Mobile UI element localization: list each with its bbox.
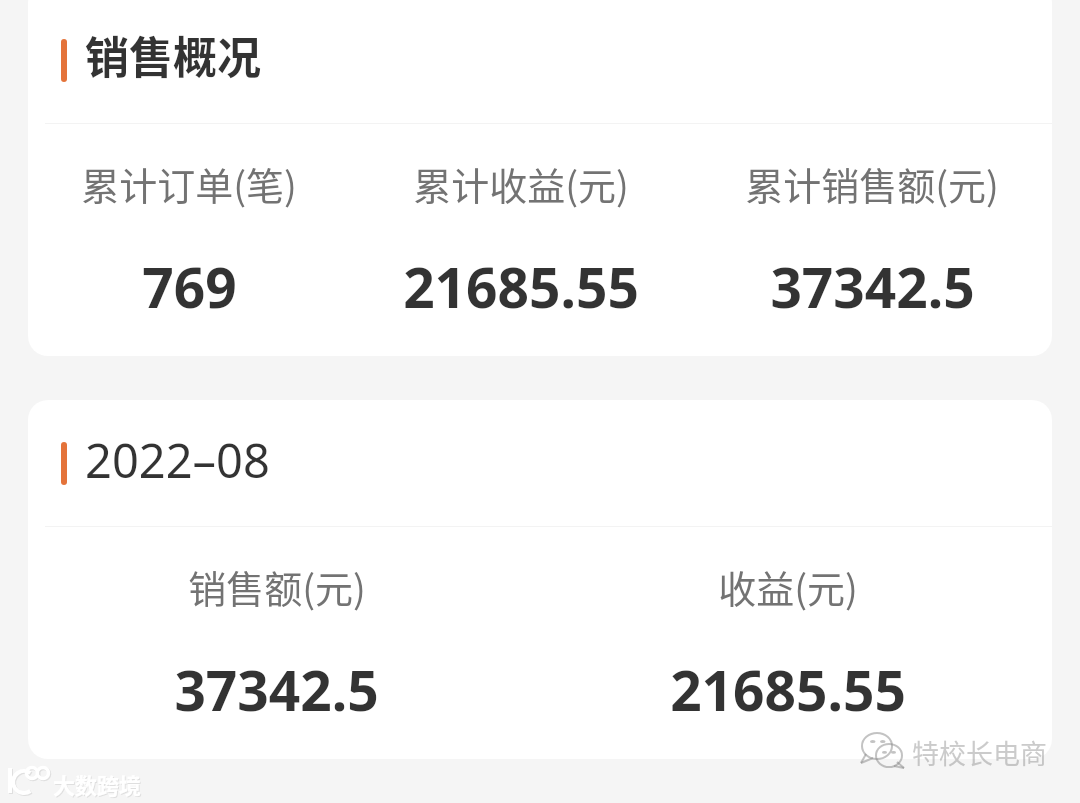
staticText: 销售额(元) [188,559,366,614]
staticText: 21685.55 [670,652,906,727]
staticText: 大数跨境 [53,768,142,800]
staticText: 21685.55 [403,249,639,324]
button[interactable]: 销售概况 [28,0,1052,356]
staticText: 累计销售额(元) [745,156,999,211]
staticText: 特校长电商 [912,733,1047,772]
button[interactable]: 2022–08 [28,400,1052,759]
staticText: 收益(元) [718,559,858,614]
staticText: 累计订单(笔) [81,156,297,211]
staticText: 769 [142,249,237,324]
staticText: 2022–08 [85,428,270,492]
staticText: 大数跨境 [54,769,143,801]
staticText: 37342.5 [770,249,975,324]
staticText: 累计收益(元) [413,156,629,211]
staticText: 销售概况 [85,23,261,87]
staticText: 37342.5 [174,652,379,727]
